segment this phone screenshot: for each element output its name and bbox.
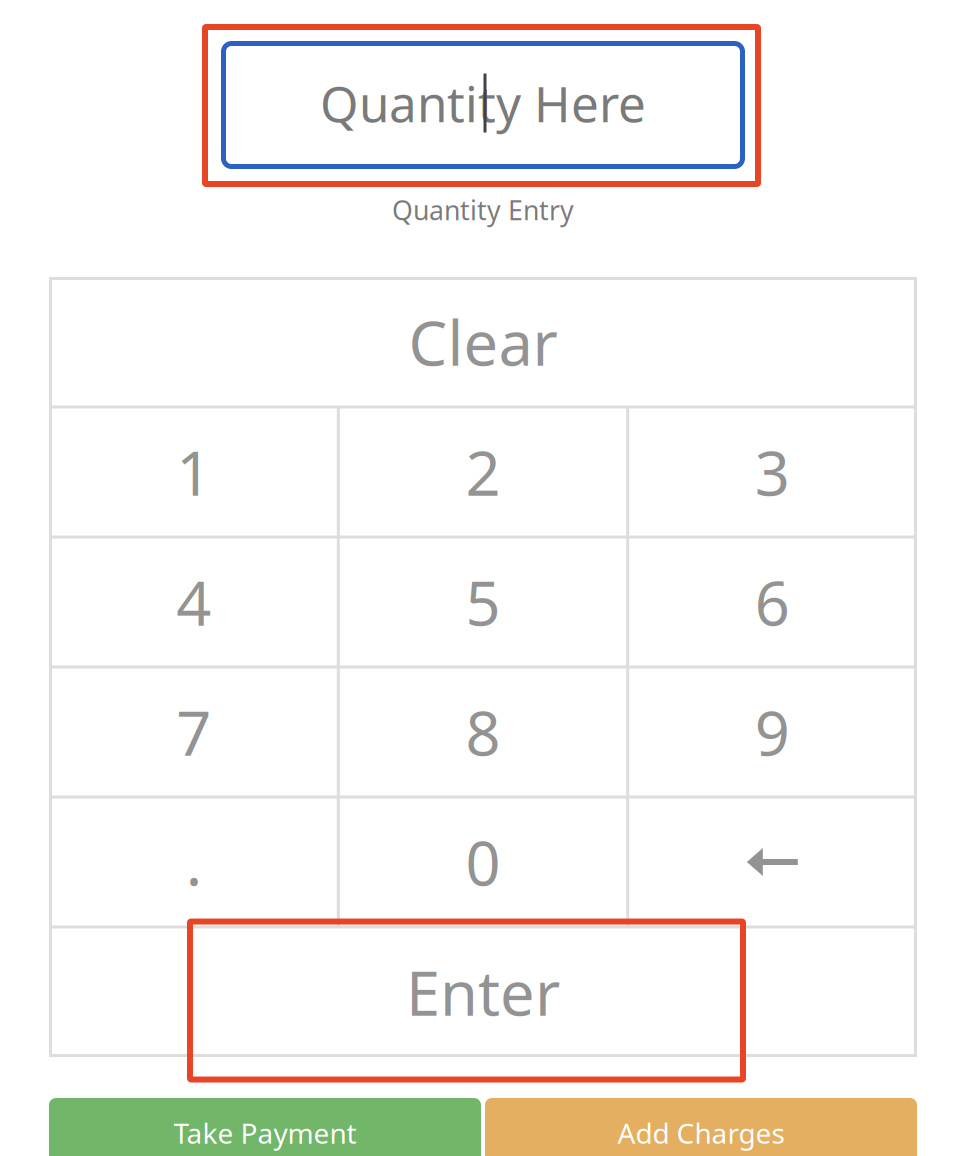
- staticText: Enter: [406, 951, 560, 1033]
- button[interactable]: 6: [628, 537, 917, 667]
- button[interactable]: Add Charges: [485, 1098, 917, 1156]
- button[interactable]: 8: [338, 667, 628, 797]
- button[interactable]: 0: [338, 797, 628, 927]
- button[interactable]: 3: [628, 407, 917, 537]
- staticText: 2: [465, 431, 500, 513]
- button[interactable]: 2: [338, 407, 628, 537]
- staticText: Add Charges: [617, 1114, 784, 1152]
- staticText: 9: [755, 691, 790, 773]
- button[interactable]: Backspace: [628, 797, 917, 927]
- button[interactable]: Take Payment: [49, 1098, 481, 1156]
- staticText: 1: [176, 431, 211, 513]
- staticText: Take Payment: [173, 1114, 356, 1152]
- button[interactable]: 4: [49, 537, 338, 667]
- staticText: 5: [465, 561, 500, 643]
- staticText: 4: [176, 561, 211, 643]
- button[interactable]: Quantity Here: [221, 41, 745, 169]
- staticText: 8: [465, 691, 500, 773]
- staticText: 0: [465, 821, 500, 903]
- staticText: 7: [176, 691, 211, 773]
- button[interactable]: 9: [628, 667, 917, 797]
- staticText: .: [186, 821, 202, 903]
- button[interactable]: .: [49, 797, 338, 927]
- button[interactable]: 5: [338, 537, 628, 667]
- button[interactable]: 7: [49, 667, 338, 797]
- staticText: 3: [755, 431, 790, 513]
- staticText: Quantity Entry: [392, 192, 574, 228]
- button[interactable]: Enter: [49, 927, 917, 1057]
- staticText: Quantity Here: [320, 70, 646, 136]
- staticText: 6: [755, 561, 790, 643]
- staticText: Clear: [408, 301, 557, 383]
- button[interactable]: 1: [49, 407, 338, 537]
- button[interactable]: Clear: [49, 277, 917, 407]
